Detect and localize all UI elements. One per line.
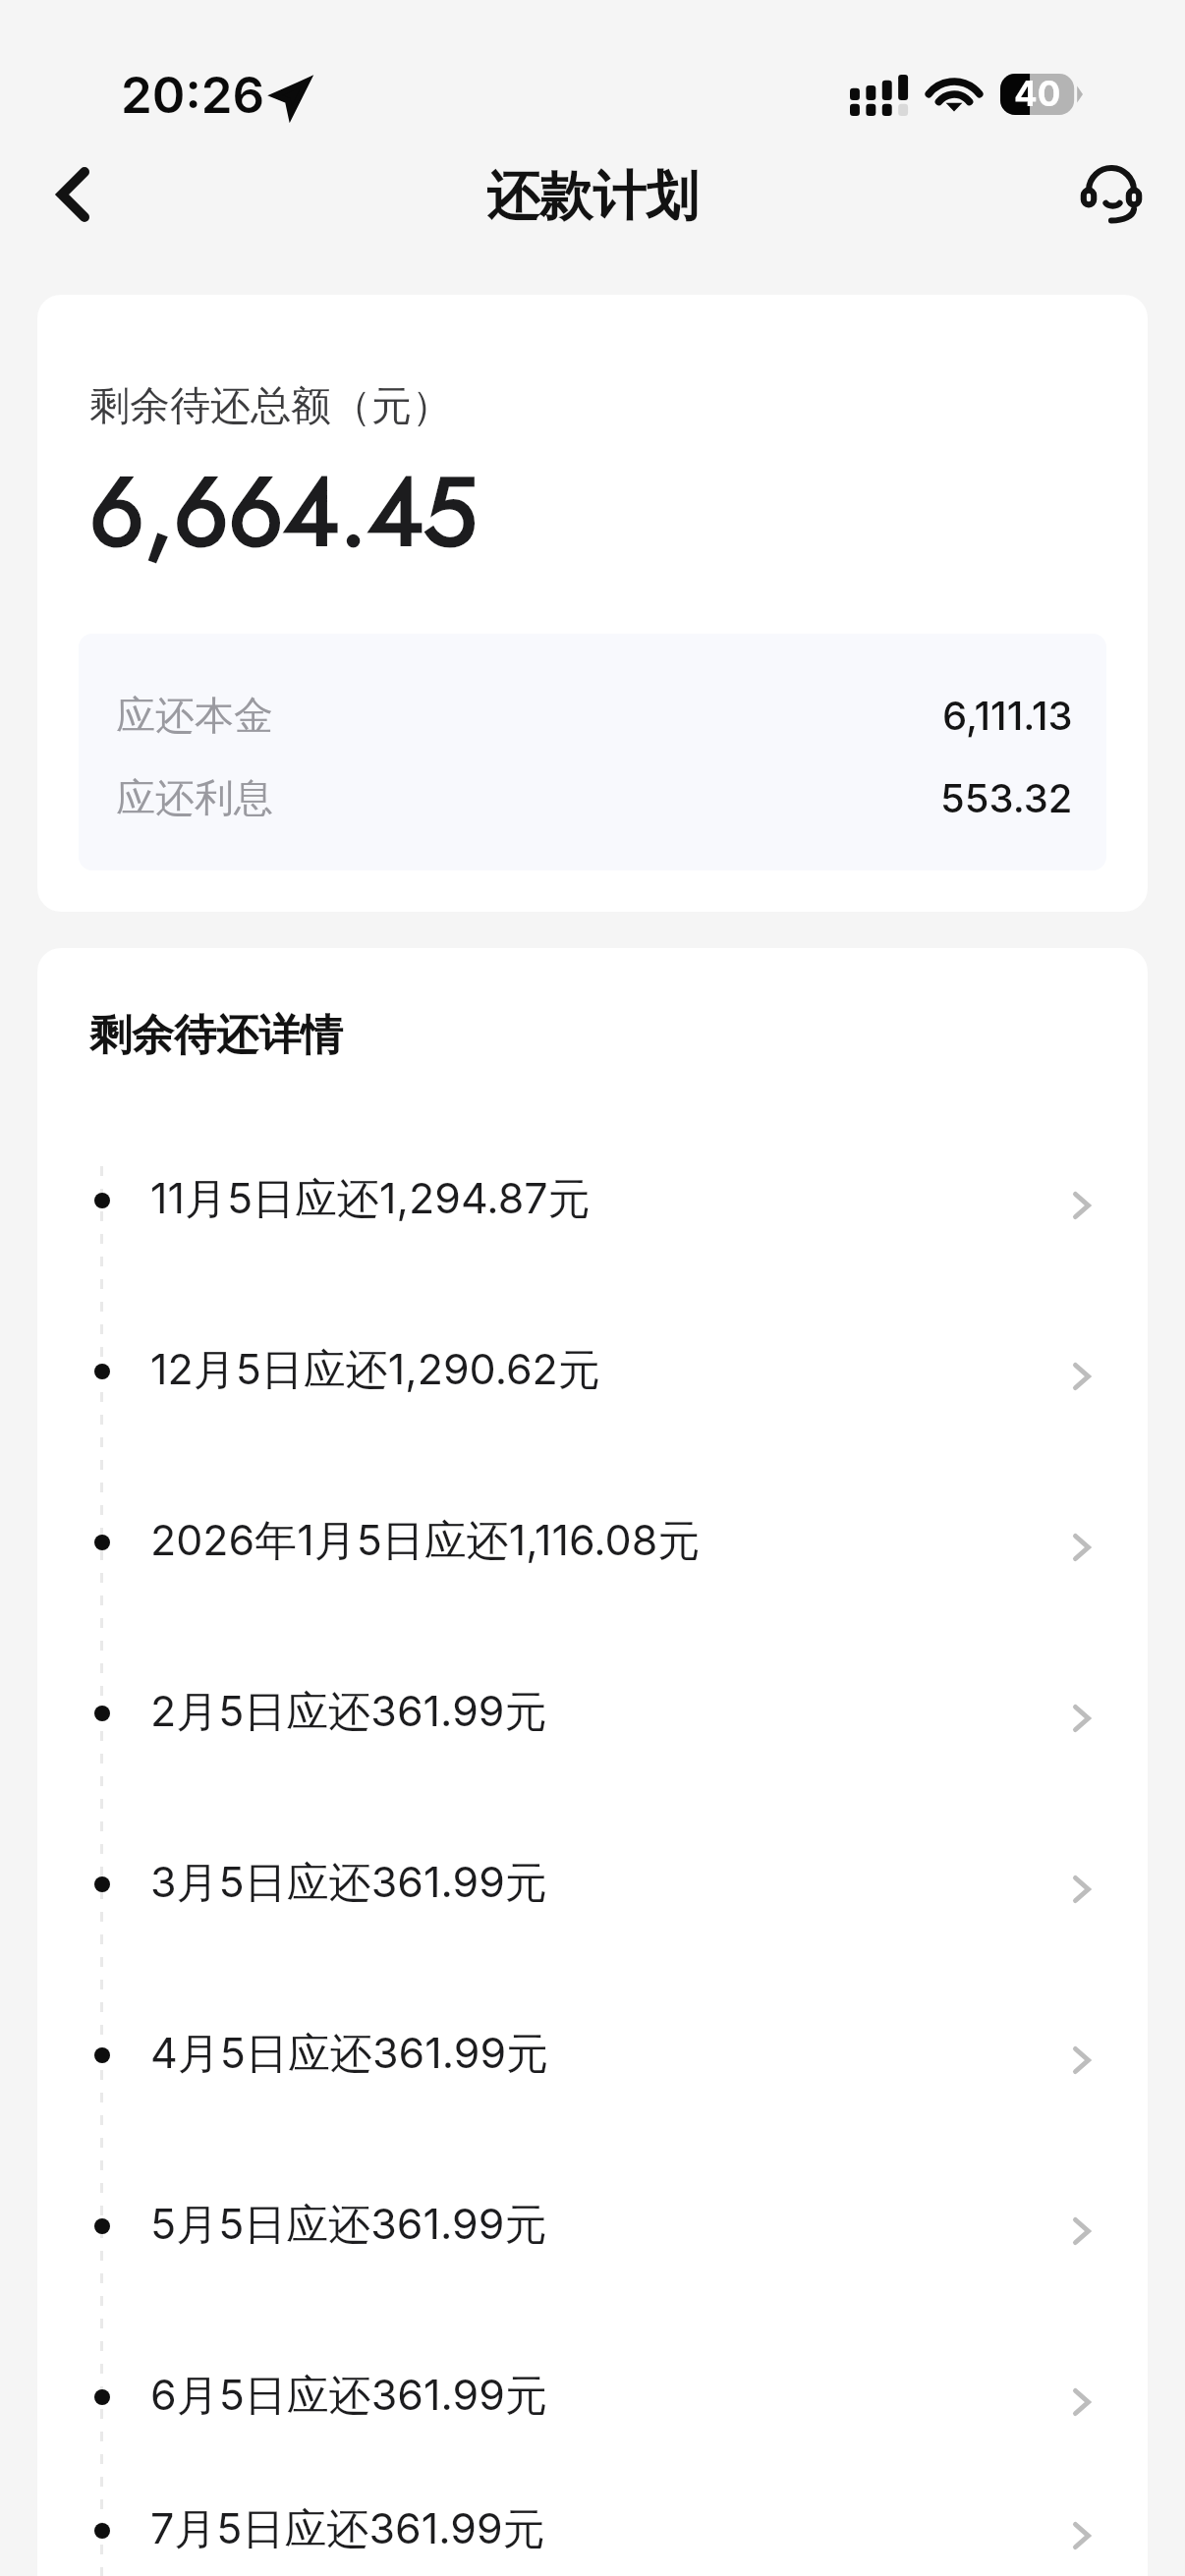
staticText: 40 [1014,73,1061,114]
staticText: 7月5日应还361.99元 [150,2502,1059,2555]
staticText: 应还利息 [116,773,273,822]
staticText: 4月5日应还361.99元 [150,2027,1059,2080]
button[interactable]: 2026年1月5日应还1,116.08元 [37,1455,1148,1626]
staticText: 3月5日应还361.99元 [150,1856,1059,1909]
staticText: 应还本金 [116,691,273,740]
staticText: 20:26 [121,65,265,126]
staticText: 还款计划 [486,163,699,230]
button[interactable]: Back [24,145,122,244]
button[interactable]: 11月5日应还1,294.87元 [37,1113,1148,1284]
staticText: 553.32 [940,774,1073,821]
staticText: 11月5日应还1,294.87元 [150,1172,1059,1225]
button[interactable]: 2月5日应还361.99元 [37,1626,1148,1797]
staticText: 剩余待还详情 [89,1009,343,1062]
button[interactable]: 6月5日应还361.99元 [37,2310,1148,2481]
staticText: 2月5日应还361.99元 [150,1685,1059,1738]
button[interactable]: 12月5日应还1,290.62元 [37,1284,1148,1455]
button[interactable]: Customer service [1062,145,1160,244]
staticText: 12月5日应还1,290.62元 [150,1343,1059,1396]
staticText: 6月5日应还361.99元 [150,2369,1059,2422]
button[interactable]: 7月5日应还361.99元 [37,2481,1148,2576]
staticText: 6,664.45 [89,443,478,581]
staticText: 2026年1月5日应还1,116.08元 [150,1514,1059,1567]
button[interactable]: 5月5日应还361.99元 [37,2139,1148,2310]
button[interactable]: 3月5日应还361.99元 [37,1797,1148,1968]
staticText: 6,111.13 [942,692,1073,739]
staticText: 剩余待还总额（元） [89,381,452,432]
button[interactable]: 4月5日应还361.99元 [37,1968,1148,2139]
staticText: 5月5日应还361.99元 [150,2198,1059,2251]
